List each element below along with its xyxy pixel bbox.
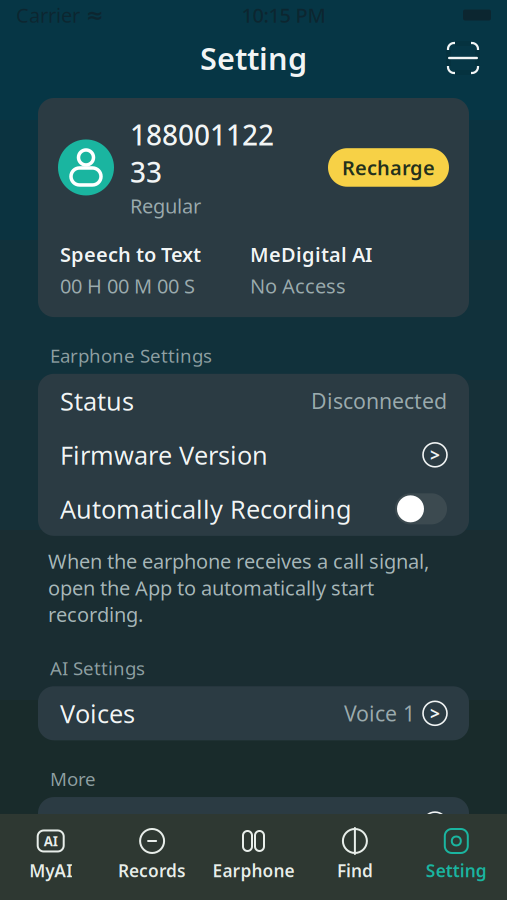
staticText: About: [60, 807, 132, 841]
button[interactable]: Status: [38, 374, 469, 428]
staticText: Setting: [200, 38, 307, 78]
staticText: Disconnected: [311, 387, 447, 415]
button[interactable]: Automatically Recording: [38, 482, 469, 536]
staticText: Regular: [130, 192, 201, 219]
staticText: No Access: [250, 272, 346, 299]
button[interactable]: Records: [101, 820, 203, 890]
button[interactable]: Recharge: [328, 148, 449, 187]
button[interactable]: AI: [0, 820, 101, 890]
staticText: >: [430, 702, 440, 725]
staticText: Find: [337, 859, 373, 882]
staticText: Firmware Version: [60, 438, 268, 472]
button[interactable]: Firmware Version: [38, 428, 469, 482]
staticText: 10:15 PM: [241, 2, 325, 28]
staticText: AI Settings: [50, 655, 145, 680]
staticText: ≈: [86, 3, 104, 27]
staticText: Automatically Recording: [60, 492, 352, 526]
staticText: More: [50, 766, 96, 791]
staticText: AI: [44, 832, 58, 850]
staticText: Records: [118, 859, 186, 882]
button[interactable]: Find: [304, 820, 406, 890]
staticText: Carrier: [16, 2, 80, 28]
button[interactable]: Earphone: [203, 820, 304, 890]
button[interactable]: Voices: [38, 686, 469, 740]
staticText: MeDigital AI: [250, 241, 372, 267]
staticText: 18800112233: [130, 116, 274, 190]
staticText: Voices: [60, 696, 135, 730]
button[interactable]: Setting: [406, 820, 507, 890]
staticText: Earphone Settings: [50, 343, 212, 368]
staticText: 00 H 00 M 00 S: [60, 272, 195, 299]
staticText: Voice 1: [344, 699, 415, 727]
staticText: Status: [60, 384, 134, 418]
staticText: >: [430, 443, 440, 466]
staticText: When the earphone receives a call signal…: [48, 548, 429, 627]
button[interactable]: Scan: [443, 38, 483, 78]
staticText: Setting: [426, 859, 487, 882]
staticText: Speech to Text: [60, 241, 201, 267]
staticText: MyAI: [29, 859, 72, 882]
button[interactable]: About: [38, 797, 469, 851]
staticText: >: [430, 813, 440, 836]
staticText: Recharge: [342, 154, 435, 181]
staticText: Earphone: [212, 859, 294, 882]
